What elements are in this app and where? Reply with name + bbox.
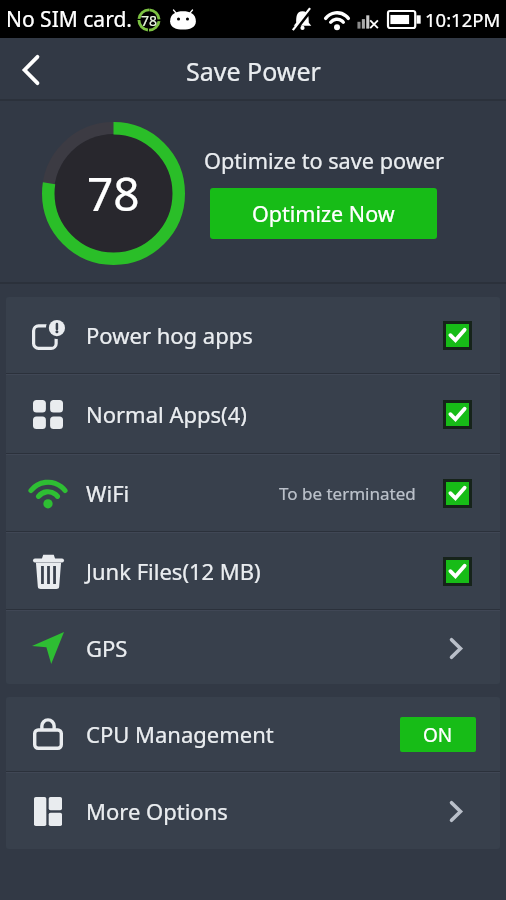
staticText: Normal Apps(4) xyxy=(86,399,247,429)
button[interactable]: Checked xyxy=(446,403,469,426)
staticText: Power hog apps xyxy=(86,320,253,350)
staticText: 78 xyxy=(141,11,158,30)
staticText: Optimize Now xyxy=(252,199,395,228)
button[interactable]: Checked xyxy=(446,482,469,505)
staticText: 78 xyxy=(87,162,140,225)
staticText: 10:12PM xyxy=(425,7,501,32)
staticText: WiFi xyxy=(86,478,130,508)
staticText: CPU Management xyxy=(86,719,274,749)
button[interactable]: WiFi xyxy=(6,455,500,531)
button[interactable]: Normal Apps(4) xyxy=(6,375,500,453)
button[interactable]: Checked xyxy=(446,560,469,583)
staticText: GPS xyxy=(86,633,128,663)
button[interactable]: Back xyxy=(0,38,62,101)
button[interactable]: Open xyxy=(444,633,468,663)
button[interactable]: Optimize Now xyxy=(210,188,437,239)
staticText: To be terminated xyxy=(279,482,416,505)
button[interactable]: GPS xyxy=(6,611,500,684)
button[interactable]: CPU Management xyxy=(6,697,500,771)
staticText: More Options xyxy=(86,796,228,826)
button[interactable]: Checked xyxy=(446,324,469,347)
button[interactable]: More Options xyxy=(6,773,500,849)
button[interactable]: ON xyxy=(400,717,476,752)
staticText: Save Power xyxy=(186,54,321,88)
button[interactable]: Open xyxy=(444,796,468,826)
staticText: Junk Files(12 MB) xyxy=(86,556,261,586)
button[interactable]: Junk Files(12 MB) xyxy=(6,533,500,609)
button[interactable]: Power hog apps xyxy=(6,297,500,373)
staticText: No SIM card. xyxy=(6,5,132,34)
staticText: ON xyxy=(423,722,453,748)
staticText: Optimize to save power xyxy=(204,146,444,176)
